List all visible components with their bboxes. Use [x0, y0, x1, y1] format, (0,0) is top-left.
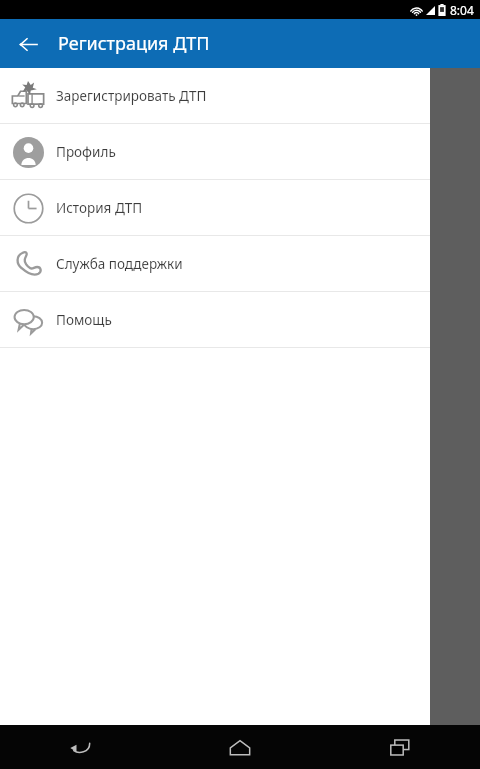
button[interactable]: Зарегистрировать ДТП [0, 68, 430, 123]
staticText: Зарегистрировать ДТП [56, 87, 207, 105]
button[interactable]: Помощь [0, 292, 430, 347]
button[interactable]: Back [10, 26, 46, 62]
button[interactable]: Профиль [0, 124, 430, 179]
staticText: Служба поддержки [56, 255, 183, 273]
button[interactable]: Home [160, 725, 320, 769]
button[interactable]: Back [0, 725, 160, 769]
staticText: Регистрация ДТП [58, 31, 210, 56]
staticText: 8:04 [450, 2, 474, 18]
staticText: Профиль [56, 143, 116, 161]
staticText: Помощь [56, 311, 112, 329]
button[interactable]: Recent apps [320, 725, 480, 769]
staticText: История ДТП [56, 199, 143, 217]
button[interactable]: Служба поддержки [0, 236, 430, 291]
button[interactable]: История ДТП [0, 180, 430, 235]
